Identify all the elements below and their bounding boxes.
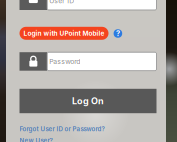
staticText: Password bbox=[49, 57, 80, 65]
staticText: Forgot User ID or Password? bbox=[19, 125, 104, 133]
staticText: New User? bbox=[19, 137, 52, 142]
button[interactable]: Login with UPoint Mobile bbox=[19, 27, 108, 40]
button[interactable]: User ID bbox=[19, 0, 156, 10]
button[interactable]: Log On bbox=[19, 89, 156, 113]
button[interactable]: Password bbox=[19, 52, 156, 71]
button[interactable]: Forgot User ID or Password? bbox=[19, 124, 156, 133]
staticText: ? bbox=[116, 29, 120, 38]
button[interactable]: Help bbox=[114, 29, 122, 38]
staticText: Log On bbox=[72, 95, 104, 106]
staticText: User ID bbox=[49, 0, 74, 5]
staticText: Login with UPoint Mobile bbox=[23, 29, 104, 37]
button[interactable]: New User? bbox=[19, 136, 156, 142]
